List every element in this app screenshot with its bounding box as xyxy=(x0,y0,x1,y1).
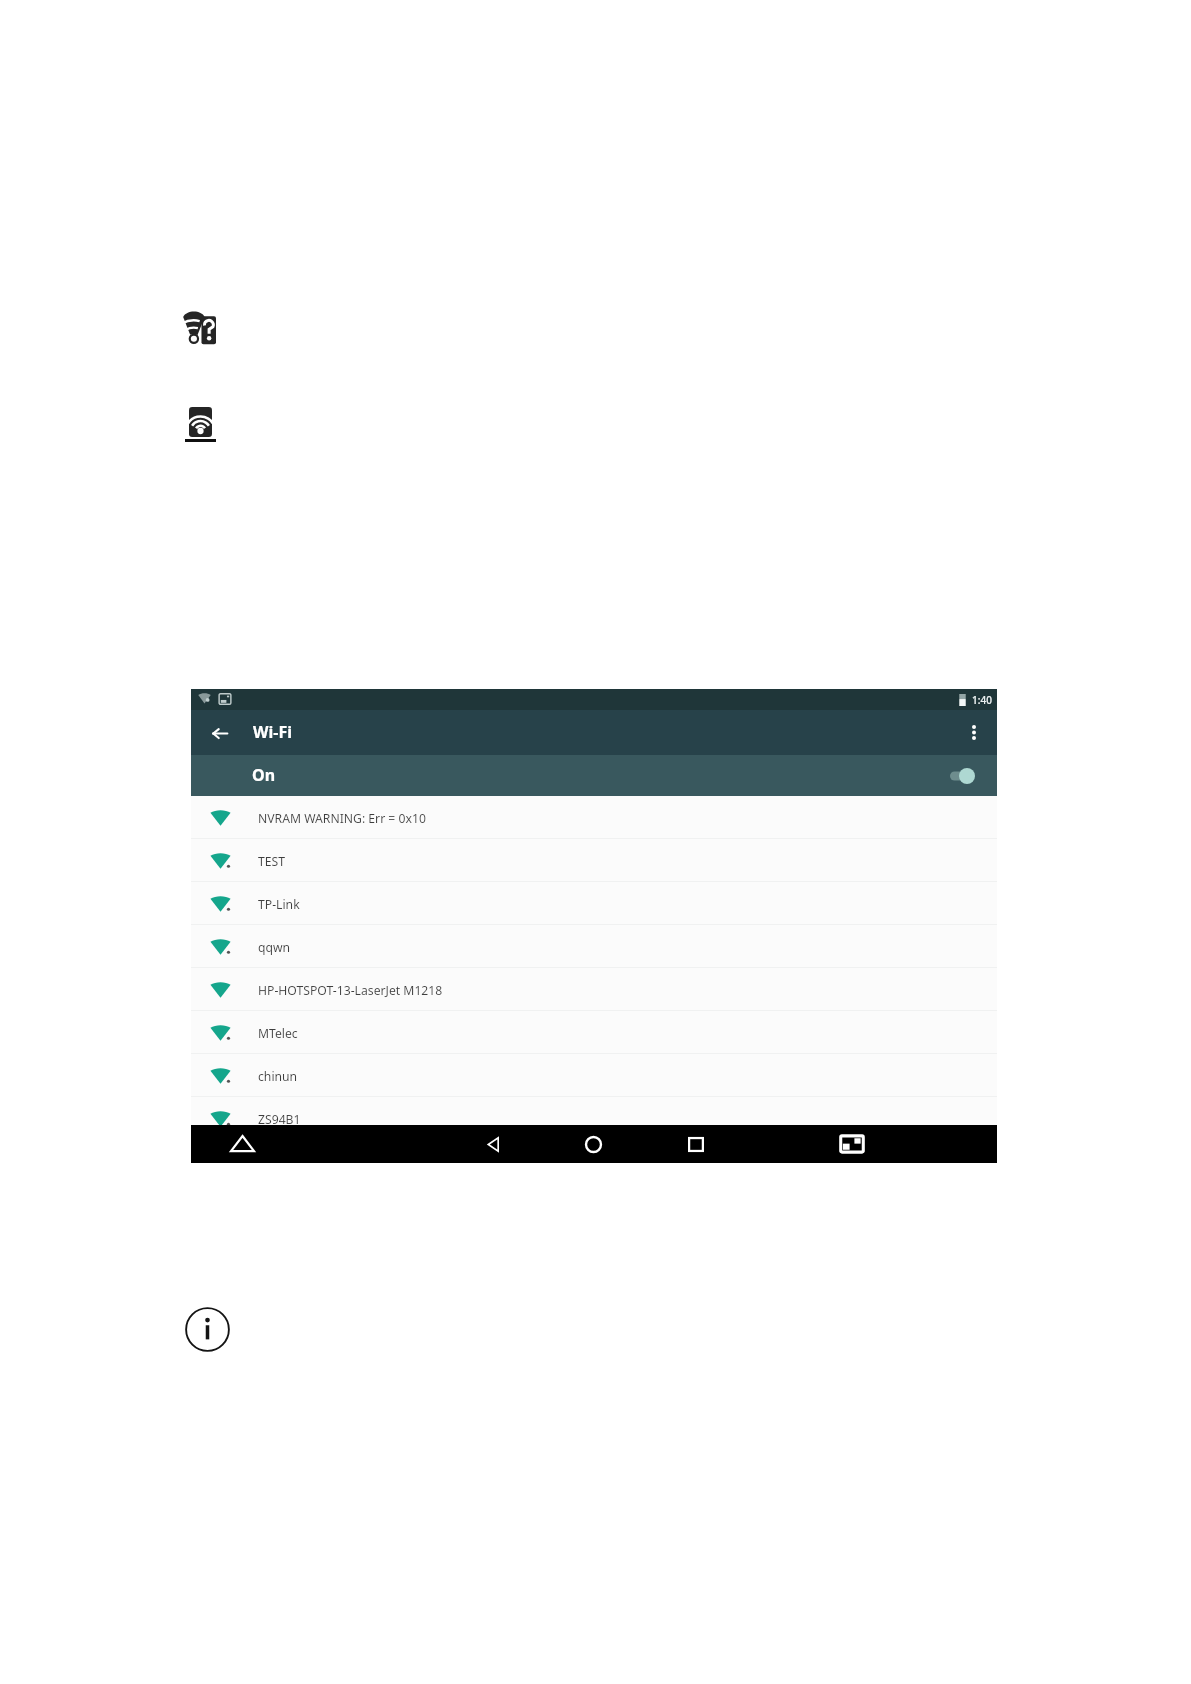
button[interactable]: On xyxy=(191,755,997,796)
button[interactable]: TEST xyxy=(191,839,997,882)
staticText: Wi-Fi xyxy=(253,721,292,743)
button[interactable]: MTelec xyxy=(191,1011,997,1054)
button[interactable]: qqwn xyxy=(191,925,997,968)
staticText: TEST xyxy=(258,853,286,870)
button[interactable]: More options xyxy=(955,710,993,755)
button[interactable]: Home xyxy=(574,1125,612,1163)
button[interactable]: Screenshot xyxy=(833,1125,871,1163)
button[interactable]: Open menu xyxy=(223,1125,261,1163)
button[interactable]: ZS94B1 xyxy=(191,1097,997,1140)
button[interactable]: Back xyxy=(474,1125,512,1163)
button[interactable]: Recent apps xyxy=(677,1125,715,1163)
staticText: HP-HOTSPOT-13-LaserJet M1218 xyxy=(258,982,443,999)
staticText: On xyxy=(252,764,276,786)
staticText: chinun xyxy=(258,1068,298,1085)
button[interactable]: NVRAM WARNING: Err = 0x10 xyxy=(191,796,997,839)
button[interactable]: chinun xyxy=(191,1054,997,1097)
staticText: 1:40 xyxy=(972,693,992,707)
staticText: ZS94B1 xyxy=(258,1111,301,1128)
button[interactable]: Navigate up xyxy=(197,710,242,755)
staticText: NVRAM WARNING: Err = 0x10 xyxy=(258,810,426,827)
button[interactable]: TP-Link xyxy=(191,882,997,925)
staticText: MTelec xyxy=(258,1025,298,1042)
staticText: TP-Link xyxy=(258,896,300,913)
button[interactable]: HP-HOTSPOT-13-LaserJet M1218 xyxy=(191,968,997,1011)
staticText: qqwn xyxy=(258,939,291,956)
